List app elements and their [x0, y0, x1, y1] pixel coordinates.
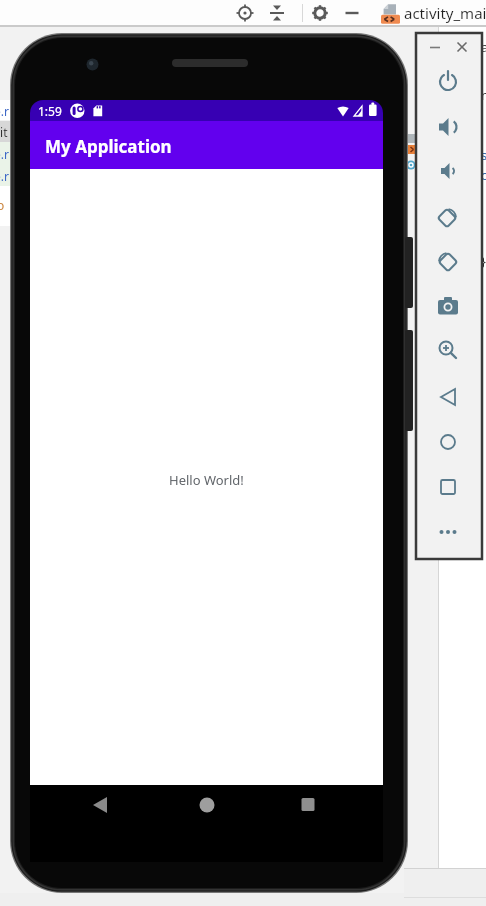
button[interactable] [432, 201, 464, 233]
staticText: n [481, 86, 486, 104]
button[interactable] [426, 38, 444, 56]
staticText: o [0, 197, 5, 213]
button[interactable] [85, 790, 115, 820]
button[interactable] [432, 381, 464, 413]
staticText: a [481, 38, 486, 56]
staticText: e.r [0, 103, 9, 119]
button[interactable] [432, 516, 464, 548]
button[interactable] [432, 334, 464, 366]
button[interactable] [293, 790, 323, 820]
staticText: Hello World! [169, 471, 244, 489]
button[interactable] [268, 4, 286, 22]
staticText: My Application [45, 135, 172, 158]
button[interactable] [432, 245, 464, 277]
button[interactable] [432, 426, 464, 458]
button[interactable] [192, 790, 222, 820]
staticText: s [481, 146, 486, 164]
button[interactable] [311, 4, 329, 22]
button[interactable] [432, 155, 464, 187]
staticText: e.r [0, 168, 9, 184]
button[interactable] [432, 290, 464, 322]
button[interactable] [432, 111, 464, 143]
staticText: activity_mai [404, 3, 486, 23]
staticText: 1:59 [38, 103, 62, 119]
staticText: e.r [0, 146, 9, 162]
button[interactable] [343, 4, 361, 22]
staticText: } [481, 252, 486, 270]
button[interactable]: activity_mai [378, 0, 486, 25]
button[interactable] [432, 65, 464, 97]
button[interactable] [236, 4, 254, 22]
button[interactable] [453, 38, 471, 56]
staticText: o [481, 166, 486, 184]
button[interactable] [432, 471, 464, 503]
staticText: vit [0, 124, 8, 140]
